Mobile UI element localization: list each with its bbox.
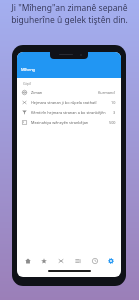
- staticText: Ziman: [31, 90, 96, 95]
- staticText: Ji "Mîheng"an zimanê sepanê: [11, 2, 128, 14]
- staticText: biguherîne û gelek tiştên din.: [11, 14, 128, 26]
- staticText: Kêmtirîn hejmara stranan a bo stranbêjên…: [31, 110, 111, 115]
- button[interactable]: Queue: [71, 254, 84, 267]
- staticText: Giştî: [23, 81, 31, 86]
- staticText: Mîheng: [21, 67, 35, 72]
- staticText: Mezinahiya wêneyên stranbêjan: [31, 120, 107, 125]
- button[interactable]: Recent: [88, 254, 101, 267]
- button[interactable]: Mezinahiya wêneyên stranbêjan: [17, 117, 121, 127]
- button[interactable]: Settings: [104, 254, 117, 267]
- button[interactable]: Hejmara stranan ji bo rûpela rasthatî: [17, 97, 121, 107]
- staticText: 10: [111, 100, 116, 105]
- staticText: 500: [109, 120, 116, 125]
- staticText: Kurmancî: [98, 90, 116, 95]
- button[interactable]: Kêmtirîn hejmara stranan a bo stranbêjên…: [17, 107, 121, 117]
- staticText: Hejmara stranan ji bo rûpela rasthatî: [31, 100, 109, 105]
- staticText: 3: [113, 110, 116, 115]
- button[interactable]: Home: [21, 254, 34, 267]
- button[interactable]: Ziman: [17, 87, 121, 97]
- button[interactable]: Shuffle: [54, 254, 67, 267]
- button[interactable]: Favourites: [37, 254, 50, 267]
